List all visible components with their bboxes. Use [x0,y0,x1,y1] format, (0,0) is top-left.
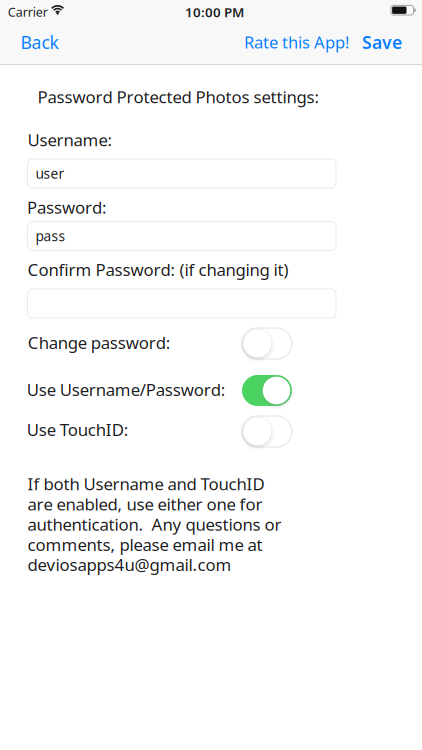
button[interactable]: Save [355,29,422,62]
staticText: Rate this App! [244,31,349,53]
button[interactable]: Back [20,29,68,62]
staticText: Password: [27,196,107,219]
staticText: user [35,164,64,183]
staticText: Confirm Password: (if changing it) [28,258,289,281]
staticText: Username: [27,128,112,151]
button[interactable]: Switch off [242,328,292,359]
staticText: Carrier [8,3,48,20]
button[interactable]: Rate this App! [234,30,355,61]
button[interactable]: Switch on [242,375,292,406]
staticText: authentication. Any questions or [28,513,282,536]
staticText: Use Username/Password: [27,378,226,401]
staticText: Back [20,30,58,54]
staticText: If both Username and TouchID [28,472,265,495]
button[interactable]: Switch off [242,416,292,447]
staticText: comments, please email me at [28,533,263,556]
staticText: 10:00 PM [185,3,244,21]
staticText: Change password: [28,331,171,354]
staticText: Save [362,30,402,54]
staticText: are enabled, use either one for [28,493,263,515]
staticText: deviosapps4u@gmail.com [28,553,232,576]
staticText: pass [35,227,65,245]
staticText: Use TouchID: [27,418,129,441]
staticText: Password Protected Photos settings: [37,85,319,108]
